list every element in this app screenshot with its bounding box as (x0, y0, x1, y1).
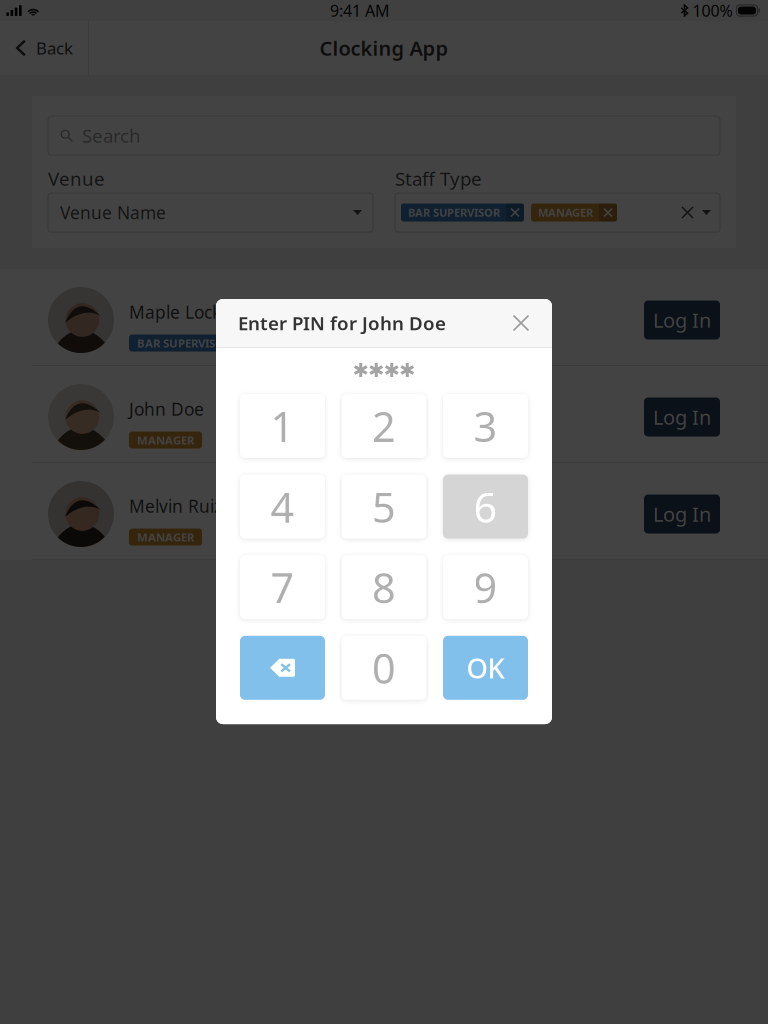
staticText: OK (466, 650, 504, 686)
staticText: 4 (270, 479, 294, 534)
staticText: MANAGER (137, 529, 194, 544)
button[interactable]: Back (0, 20, 89, 75)
staticText: MANAGER (137, 432, 194, 447)
staticText: MANAGER (538, 205, 593, 220)
staticText: 3 (473, 399, 497, 453)
staticText: Maple Lock (129, 300, 221, 323)
staticText: 6 (473, 479, 497, 534)
staticText: 9 (473, 560, 497, 615)
staticText: Venue (48, 166, 105, 191)
staticText: 8 (372, 560, 396, 615)
button[interactable]: Close (506, 306, 536, 340)
button[interactable]: Remove BAR SUPERVISOR (506, 203, 524, 221)
staticText: Log In (653, 404, 711, 430)
button[interactable]: Clear staff type (677, 193, 698, 232)
staticText: 5 (372, 479, 396, 534)
staticText: BAR SUPERVISOR (137, 335, 231, 350)
staticText: BAR SUPERVISOR (408, 205, 500, 220)
button[interactable]: 6 (443, 475, 528, 539)
staticText: Clocking App (319, 35, 448, 61)
button[interactable]: Venue Name (48, 193, 373, 232)
staticText: 2 (372, 399, 396, 453)
button[interactable]: 1 (240, 394, 325, 458)
button[interactable]: Log In (644, 300, 720, 339)
staticText: Search (82, 123, 141, 148)
staticText: 7 (270, 560, 294, 615)
button[interactable]: 7 (240, 555, 325, 619)
button[interactable]: Log In (644, 397, 720, 436)
staticText: Back (36, 37, 73, 59)
staticText: Venue Name (60, 201, 166, 224)
button[interactable]: OK (443, 636, 528, 700)
button[interactable]: Remove MANAGER (599, 203, 617, 221)
staticText: 9:41 AM (330, 0, 390, 21)
button[interactable]: Log In (644, 494, 720, 533)
staticText: John Doe (129, 397, 204, 420)
staticText: 1 (270, 399, 294, 453)
staticText: 100% (692, 0, 732, 21)
button[interactable]: 9 (443, 555, 528, 619)
staticText: Log In (653, 501, 711, 527)
button[interactable]: 5 (341, 475, 426, 539)
button[interactable]: 4 (240, 475, 325, 539)
button[interactable]: 8 (341, 555, 426, 619)
button[interactable]: 0 (341, 636, 426, 700)
staticText: Enter PIN for John Doe (238, 311, 446, 335)
button[interactable]: Delete (240, 636, 325, 700)
staticText: 0 (372, 640, 396, 695)
button[interactable]: 3 (443, 394, 528, 458)
staticText: Log In (653, 307, 711, 333)
button[interactable]: 2 (341, 394, 426, 458)
staticText: Staff Type (395, 166, 482, 191)
staticText: Melvin Ruiz (129, 494, 222, 517)
